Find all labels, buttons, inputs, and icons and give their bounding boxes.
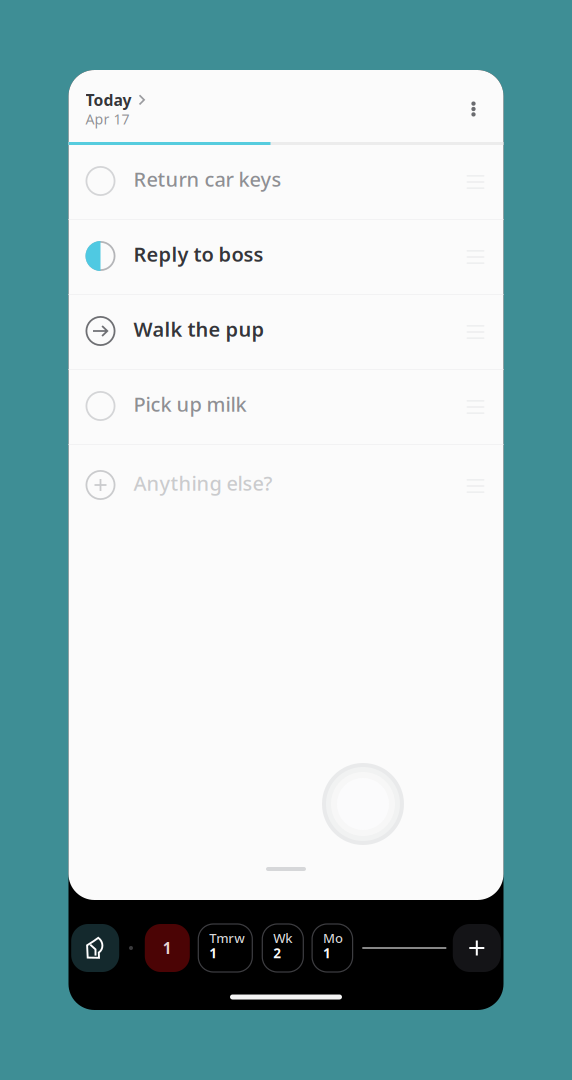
staticText: Anything else? [133,469,272,497]
button[interactable]: Compose [71,924,119,972]
button[interactable]: Anything else? [68,445,503,519]
button[interactable]: Add [453,924,501,972]
staticText: 2 [273,944,281,962]
button[interactable]: Reply to boss [68,220,503,294]
staticText: Reply to boss [133,240,263,268]
button[interactable]: Tmrw [198,924,252,972]
staticText: 1 [163,938,172,958]
staticText: 1 [323,944,331,962]
staticText: Pick up milk [133,390,246,418]
button[interactable]: Today [85,90,145,110]
staticText: Return car keys [133,165,281,193]
button[interactable]: More options [460,90,486,128]
button[interactable]: 1 [145,924,190,972]
button[interactable]: Walk the pup [68,295,503,369]
staticText: Tmrw [209,929,245,947]
staticText: Wk [273,929,292,947]
staticText: Mo [323,929,343,947]
staticText: Apr 17 [85,109,129,129]
staticText: Today [85,89,131,111]
button[interactable]: Pick up milk [68,370,503,444]
button[interactable]: Wk [262,924,303,972]
button[interactable]: Mo [312,924,353,972]
staticText: 1 [209,944,217,962]
staticText: Walk the pup [133,315,264,343]
button[interactable]: Return car keys [68,145,503,219]
